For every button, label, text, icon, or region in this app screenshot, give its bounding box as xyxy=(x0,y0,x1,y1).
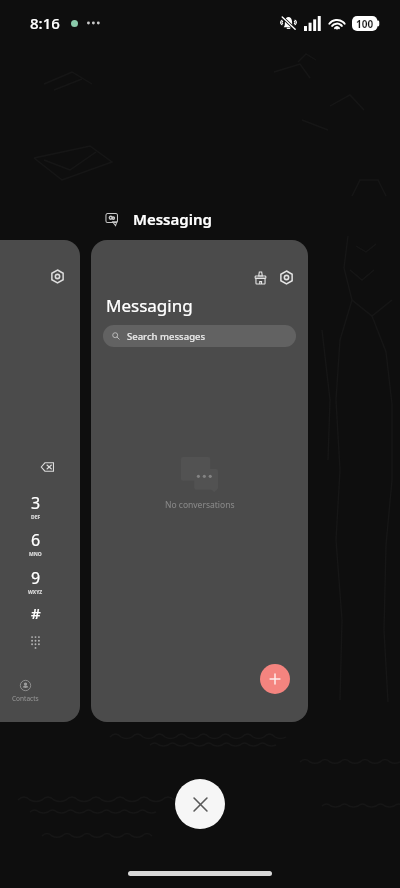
button[interactable]: Settings xyxy=(273,264,300,291)
button[interactable]: Contacts xyxy=(5,680,46,703)
button[interactable]: 3 xyxy=(15,492,56,521)
staticText: Search messages xyxy=(127,330,206,343)
staticText: MNO xyxy=(29,551,42,558)
button[interactable]: Phone app task xyxy=(0,240,80,722)
staticText: 100 xyxy=(356,17,374,31)
staticText: 8:16 xyxy=(30,13,60,33)
button[interactable]: Backspace xyxy=(34,454,60,480)
button[interactable]: Search messages xyxy=(103,325,296,347)
button[interactable]: # xyxy=(15,603,56,623)
staticText: 6 xyxy=(31,529,41,551)
button[interactable]: Messaging xyxy=(105,207,212,231)
button[interactable]: Dialer settings xyxy=(44,263,71,290)
button[interactable]: 6 xyxy=(15,529,56,558)
button[interactable]: Messaging app task xyxy=(91,240,308,722)
button[interactable]: Clean up xyxy=(247,264,274,291)
staticText: 9 xyxy=(31,567,41,589)
button[interactable]: Close all xyxy=(175,779,225,829)
staticText: Messaging xyxy=(133,209,212,229)
button[interactable]: 9 xyxy=(15,567,56,596)
staticText: # xyxy=(31,603,41,623)
staticText: Contacts xyxy=(12,694,39,703)
button[interactable]: New conversation xyxy=(260,664,290,694)
staticText: Messaging xyxy=(106,294,193,317)
staticText: No conversations xyxy=(165,499,235,511)
staticText: 3 xyxy=(31,492,41,514)
staticText: WXYZ xyxy=(28,589,43,596)
staticText: DEF xyxy=(31,514,41,521)
button[interactable]: Keypad xyxy=(15,632,56,652)
